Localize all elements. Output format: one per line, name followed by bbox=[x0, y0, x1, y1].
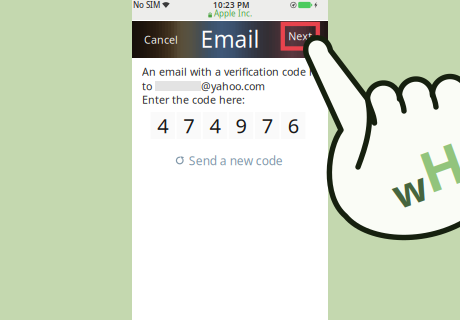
staticText: 7 bbox=[262, 112, 273, 139]
staticText: Enter the code here: bbox=[142, 92, 245, 107]
button[interactable]: Cancel bbox=[141, 21, 181, 58]
staticText: No SIM bbox=[133, 0, 160, 10]
staticText: 6 bbox=[288, 112, 299, 139]
staticText: to bbox=[142, 79, 155, 93]
staticText: 7 bbox=[183, 112, 194, 139]
staticText: An email with a verification code has be… bbox=[142, 64, 381, 79]
staticText: 4 bbox=[209, 112, 220, 139]
staticText: Send a new code bbox=[189, 152, 283, 168]
staticText: 4 bbox=[157, 112, 168, 139]
button[interactable]: Next bbox=[283, 24, 318, 48]
staticText: Cancel bbox=[144, 32, 178, 47]
staticText: 10:23 PM bbox=[213, 0, 249, 10]
staticText: 9 bbox=[236, 112, 247, 139]
staticText: @yahoo.com bbox=[201, 79, 265, 93]
staticText: Email bbox=[200, 24, 259, 54]
staticText: w bbox=[387, 156, 421, 209]
staticText: Next bbox=[288, 29, 312, 43]
button[interactable]: Send a new code bbox=[171, 149, 287, 171]
staticText: Apple Inc. bbox=[214, 8, 252, 19]
staticText: H bbox=[421, 135, 460, 209]
